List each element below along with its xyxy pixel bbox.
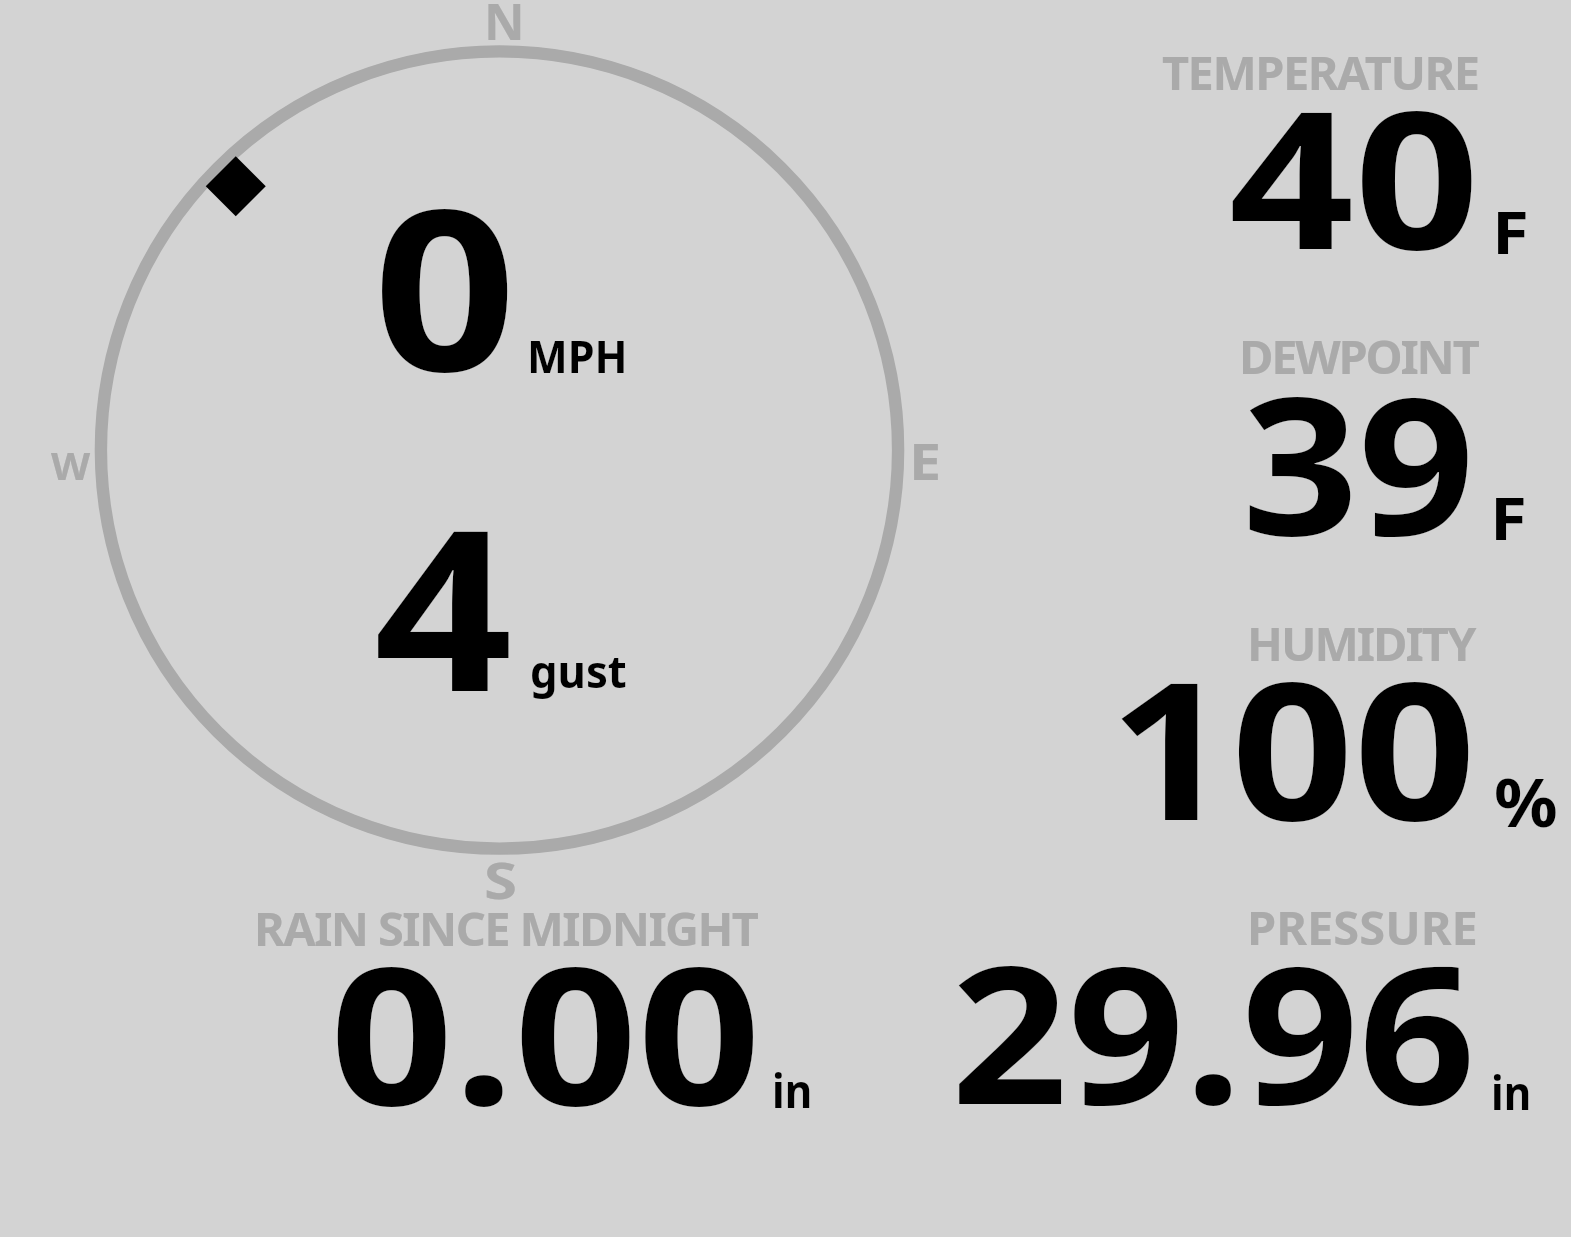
staticText: S bbox=[484, 846, 518, 914]
button[interactable]: Rain since midnight 0.00 inches bbox=[240, 892, 840, 1120]
staticText: gust bbox=[530, 640, 627, 701]
button[interactable]: Humidity 100 percent bbox=[1100, 608, 1571, 836]
staticText: DEWPOINT bbox=[1239, 324, 1478, 388]
button[interactable]: Temperature 40 degrees Fahrenheit bbox=[1100, 40, 1571, 275]
staticText: N bbox=[484, 0, 525, 55]
staticText: 29.96 bbox=[951, 900, 1476, 1160]
staticText: 4 bbox=[374, 454, 513, 756]
button[interactable]: Wind: 0 miles per hour, gusting 4, direc… bbox=[94, 45, 906, 856]
staticText: in bbox=[772, 1059, 812, 1122]
staticText: 40 bbox=[1229, 45, 1480, 305]
button[interactable]: Pressure 29.96 inches bbox=[930, 892, 1571, 1120]
staticText: 39 bbox=[1242, 331, 1475, 591]
staticText: % bbox=[1494, 756, 1558, 846]
staticText: W bbox=[51, 440, 91, 491]
staticText: 0 bbox=[373, 134, 516, 436]
button[interactable]: Dewpoint 39 degrees Fahrenheit bbox=[1100, 322, 1571, 550]
staticText: 100 bbox=[1109, 616, 1476, 876]
staticText: MPH bbox=[527, 325, 628, 386]
staticText: 0.00 bbox=[330, 901, 762, 1161]
staticText: HUMIDITY bbox=[1247, 611, 1475, 675]
staticText: TEMPERATURE bbox=[1162, 40, 1479, 104]
staticText: F bbox=[1490, 476, 1527, 558]
staticText: F bbox=[1492, 190, 1529, 272]
staticText: E bbox=[909, 427, 941, 495]
staticText: PRESSURE bbox=[1247, 895, 1478, 959]
staticText: in bbox=[1491, 1061, 1531, 1124]
staticText: RAIN SINCE MIDNIGHT bbox=[254, 896, 758, 960]
